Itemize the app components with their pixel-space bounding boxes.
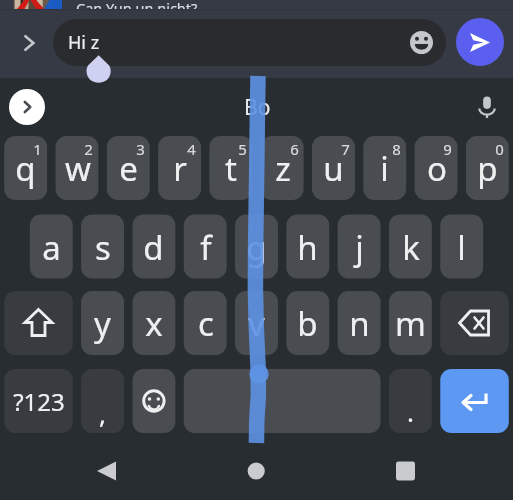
button[interactable]: Space	[184, 369, 381, 433]
staticText: v	[248, 301, 265, 346]
staticText: y	[94, 301, 111, 346]
button[interactable]: ?123	[4, 369, 73, 433]
button[interactable]: s	[81, 215, 124, 279]
staticText: b	[297, 301, 318, 346]
button[interactable]: Backspace	[440, 291, 509, 355]
button[interactable]: Shift	[4, 291, 73, 355]
button[interactable]: o	[415, 136, 458, 200]
staticText: p	[477, 146, 498, 191]
staticText: a	[42, 225, 61, 270]
staticText: ,	[99, 396, 106, 431]
button[interactable]: y	[81, 291, 124, 355]
button[interactable]: n	[338, 291, 381, 355]
button[interactable]: i	[363, 136, 406, 200]
button[interactable]: p	[466, 136, 509, 200]
button[interactable]: Emoji	[132, 369, 175, 433]
staticText: t	[225, 146, 237, 191]
staticText: s	[95, 225, 111, 270]
staticText: m	[395, 301, 426, 346]
button[interactable]: Bo	[232, 90, 282, 124]
staticText: i	[380, 146, 389, 191]
button[interactable]: Hi z	[53, 19, 446, 66]
button[interactable]: ,	[81, 369, 124, 433]
staticText: ?123	[13, 385, 65, 418]
button[interactable]: a	[30, 215, 73, 279]
staticText: r	[173, 146, 187, 191]
staticText: 5	[238, 139, 247, 157]
staticText: 9	[443, 139, 452, 157]
staticText: 3	[136, 139, 145, 157]
button[interactable]: d	[132, 215, 175, 279]
staticText: 7	[341, 139, 350, 157]
button[interactable]: q	[4, 136, 47, 200]
staticText: u	[323, 146, 344, 191]
button[interactable]: v	[235, 291, 278, 355]
button[interactable]: x	[132, 291, 175, 355]
button[interactable]: Home	[219, 433, 293, 500]
button[interactable]: g	[235, 215, 278, 279]
staticText: Hi z	[68, 30, 100, 55]
button[interactable]: k	[389, 215, 432, 279]
staticText: q	[15, 146, 36, 191]
button[interactable]: More suggestions	[9, 89, 45, 125]
staticText: e	[119, 146, 138, 191]
button[interactable]: l	[440, 215, 483, 279]
button[interactable]: h	[286, 215, 329, 279]
staticText: g	[246, 225, 267, 270]
staticText: n	[349, 301, 370, 346]
button[interactable]: Back	[70, 433, 144, 500]
staticText: l	[457, 225, 466, 270]
staticText: .	[407, 394, 414, 429]
staticText: f	[200, 225, 212, 270]
staticText: x	[145, 301, 163, 346]
staticText: o	[427, 146, 447, 191]
button[interactable]: e	[107, 136, 150, 200]
staticText: Can Yun un nicht?	[76, 0, 198, 18]
button[interactable]: t	[209, 136, 252, 200]
button[interactable]: u	[312, 136, 355, 200]
staticText: 2	[84, 139, 93, 157]
staticText: j	[355, 225, 364, 270]
staticText: h	[297, 225, 318, 270]
button[interactable]: Emoji	[407, 28, 436, 57]
staticText: z	[275, 146, 291, 191]
button[interactable]: Expand	[8, 20, 50, 66]
staticText: c	[198, 301, 214, 346]
staticText: 6	[290, 139, 299, 157]
staticText: 1	[33, 139, 42, 157]
button[interactable]: z	[261, 136, 304, 200]
button[interactable]: b	[286, 291, 329, 355]
button[interactable]: Voice input	[470, 90, 504, 124]
staticText: d	[143, 225, 164, 270]
staticText: 0	[495, 139, 504, 157]
button[interactable]: m	[389, 291, 432, 355]
button[interactable]: Enter	[440, 369, 509, 433]
button[interactable]: Recents	[369, 433, 443, 500]
staticText: w	[65, 146, 91, 191]
staticText: k	[402, 225, 420, 270]
button[interactable]: Send	[456, 18, 504, 66]
button[interactable]: f	[184, 215, 227, 279]
button[interactable]: j	[338, 215, 381, 279]
button[interactable]: w	[56, 136, 99, 200]
button[interactable]: c	[184, 291, 227, 355]
staticText: 4	[187, 139, 196, 157]
staticText: 8	[392, 139, 401, 157]
button[interactable]: r	[158, 136, 201, 200]
button[interactable]: .	[389, 369, 432, 433]
staticText: Bo	[244, 93, 271, 122]
